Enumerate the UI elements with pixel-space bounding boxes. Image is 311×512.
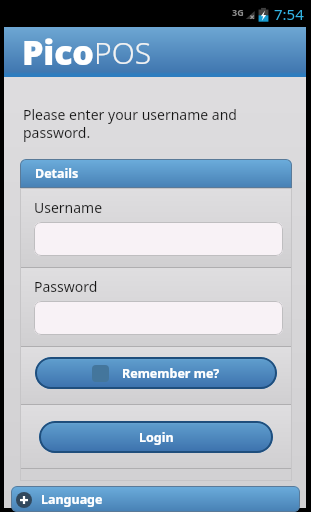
button[interactable] bbox=[34, 301, 283, 335]
other: Expand Language bbox=[16, 492, 32, 508]
button[interactable] bbox=[34, 222, 283, 256]
staticText: 3G bbox=[232, 6, 244, 18]
button[interactable]: Details bbox=[20, 159, 292, 188]
staticText: 7:54 bbox=[274, 4, 304, 24]
staticText: Login bbox=[139, 429, 174, 446]
button[interactable]: Remember me? bbox=[35, 357, 277, 389]
staticText: Username bbox=[34, 198, 103, 217]
staticText: Please enter your username and password. bbox=[23, 105, 253, 142]
staticText: Remember me? bbox=[122, 365, 220, 382]
button[interactable]: Login bbox=[39, 421, 273, 453]
staticText: POS bbox=[94, 32, 152, 73]
staticText: Pico bbox=[22, 29, 94, 75]
staticText: Language bbox=[41, 491, 103, 508]
button[interactable]: Expand Language bbox=[11, 486, 300, 512]
staticText: Password bbox=[34, 277, 98, 296]
staticText: Details bbox=[35, 165, 79, 182]
